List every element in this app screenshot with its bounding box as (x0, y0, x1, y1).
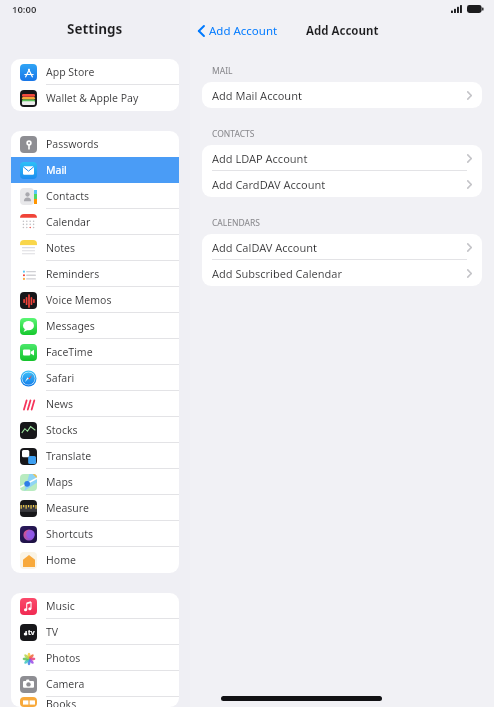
staticText: Shortcuts (46, 527, 94, 541)
staticText: Photos (46, 651, 81, 665)
staticText: Passwords (46, 137, 99, 151)
button[interactable]: Add CalDAV Account (202, 234, 482, 260)
staticText: Add CalDAV Account (212, 240, 318, 255)
button[interactable]: Passwords (11, 131, 179, 157)
staticText: Safari (46, 371, 75, 385)
staticText: Add Subscribed Calendar (212, 266, 342, 281)
staticText: Messages (46, 319, 95, 333)
staticText: Add Account (306, 23, 379, 39)
staticText: FaceTime (46, 345, 93, 359)
button[interactable]: Wallet & Apple Pay (11, 85, 179, 111)
staticText: Reminders (46, 267, 100, 281)
staticText: Stocks (46, 423, 78, 437)
staticText: Maps (46, 475, 73, 489)
staticText: News (46, 397, 73, 411)
staticText: Settings (67, 20, 123, 38)
button[interactable]: Maps (11, 469, 179, 495)
button[interactable]: Translate (11, 443, 179, 469)
button[interactable]: Messages (11, 313, 179, 339)
button[interactable]: Add CardDAV Account (202, 171, 482, 197)
staticText: Contacts (46, 189, 90, 203)
button[interactable]: Calendar (11, 209, 179, 235)
button[interactable]: Voice Memos (11, 287, 179, 313)
staticText: Translate (46, 449, 92, 463)
button[interactable]: Mail (11, 157, 179, 183)
staticText: Add Account (209, 23, 278, 39)
staticText: Notes (46, 241, 76, 255)
staticText: Add CardDAV Account (212, 177, 326, 192)
button[interactable]: Camera (11, 671, 179, 697)
staticText: App Store (46, 65, 95, 79)
staticText: CALENDARS (212, 217, 260, 229)
button[interactable]: App Store (11, 59, 179, 85)
button[interactable]: Add LDAP Account (202, 145, 482, 171)
button[interactable]: Music (11, 593, 179, 619)
button[interactable]: Notes (11, 235, 179, 261)
staticText: Books (46, 697, 77, 707)
staticText: Home (46, 553, 76, 567)
staticText: Voice Memos (46, 293, 112, 307)
button[interactable]: Home (11, 547, 179, 573)
staticText: Camera (46, 677, 85, 691)
button[interactable]: Safari (11, 365, 179, 391)
button[interactable]: Photos (11, 645, 179, 671)
staticText: Music (46, 599, 75, 613)
staticText: tv (28, 628, 35, 638)
button[interactable]: Add Subscribed Calendar (202, 260, 482, 286)
staticText: Add LDAP Account (212, 151, 308, 166)
staticText: Wallet & Apple Pay (46, 91, 139, 105)
button[interactable]: Books (11, 697, 179, 707)
button[interactable]: Shortcuts (11, 521, 179, 547)
button[interactable]: Reminders (11, 261, 179, 287)
button[interactable]: News (11, 391, 179, 417)
button[interactable]: tv (11, 619, 179, 645)
button[interactable]: Add Mail Account (202, 82, 482, 108)
staticText: Mail (46, 163, 67, 177)
staticText: Measure (46, 501, 89, 515)
button[interactable]: Stocks (11, 417, 179, 443)
button[interactable]: Add Account (198, 20, 278, 42)
button[interactable]: FaceTime (11, 339, 179, 365)
button[interactable]: Contacts (11, 183, 179, 209)
staticText: 10:00 (12, 3, 37, 16)
staticText: Add Mail Account (212, 88, 302, 103)
staticText: MAIL (212, 65, 233, 77)
staticText: CONTACTS (212, 128, 255, 140)
button[interactable]: Measure (11, 495, 179, 521)
staticText: Calendar (46, 215, 91, 229)
staticText: TV (46, 625, 59, 639)
